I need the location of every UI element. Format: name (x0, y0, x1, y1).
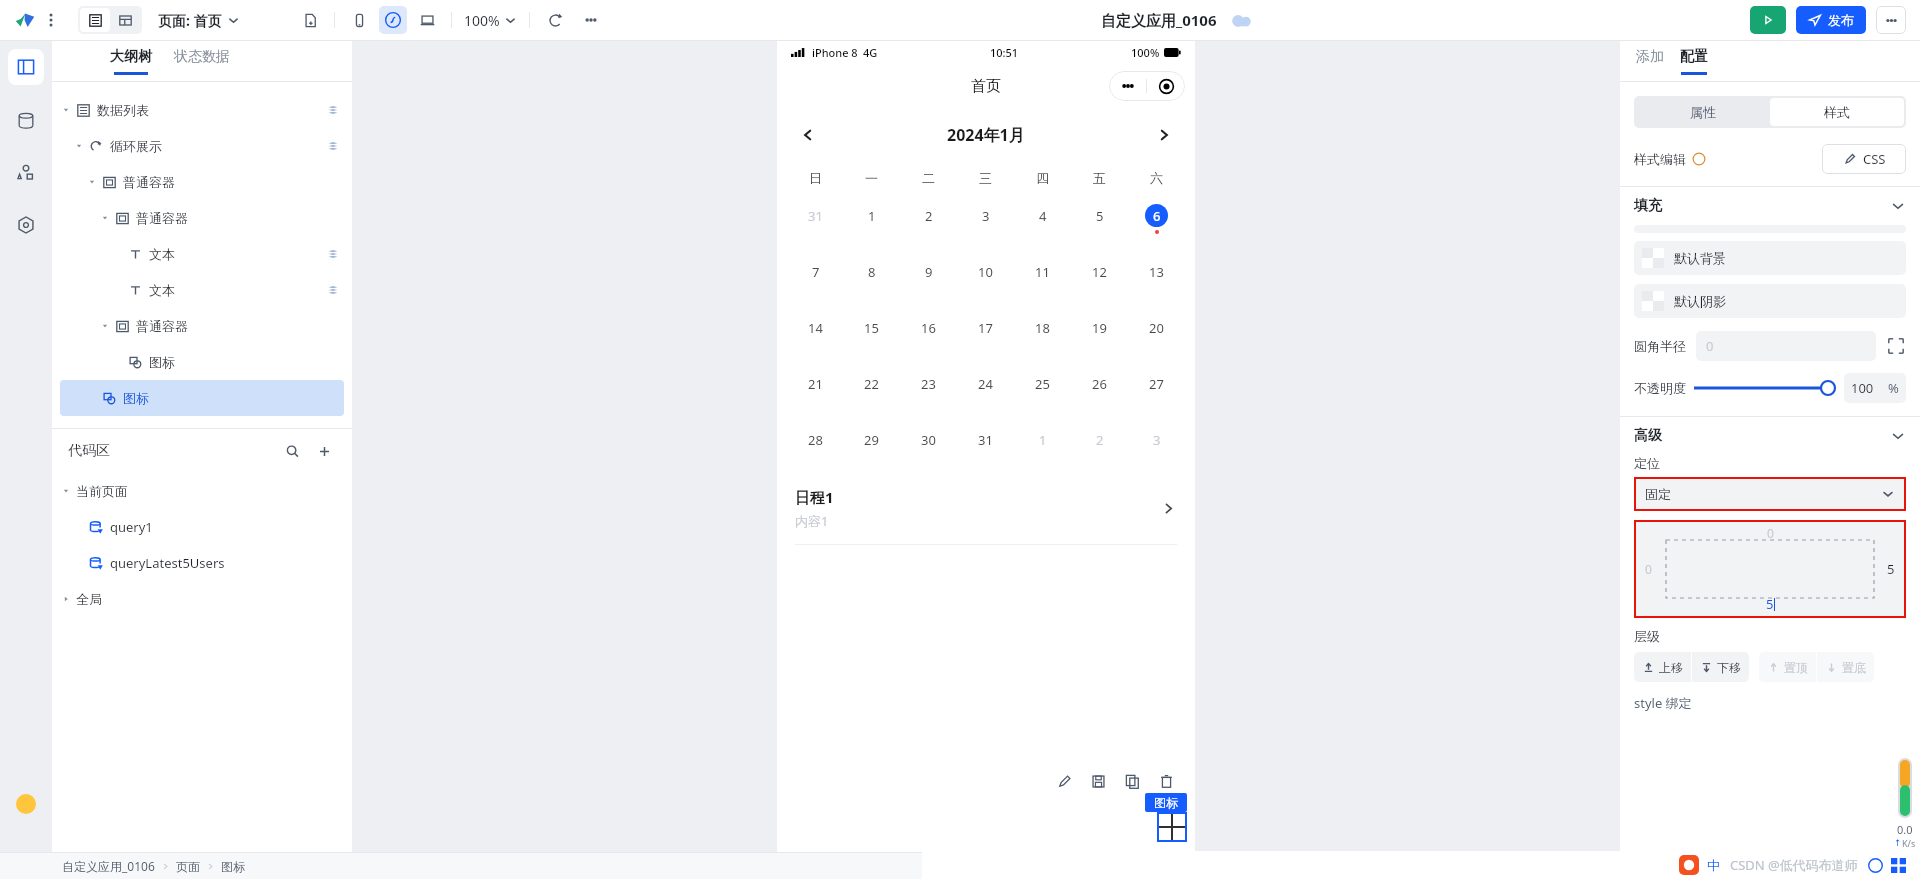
button[interactable]: Delete (1149, 764, 1183, 798)
button[interactable]: Mini program preview (379, 6, 407, 34)
button[interactable]: Corner sides (1886, 336, 1906, 356)
button[interactable]: Next month (1151, 122, 1177, 148)
button[interactable]: 当前页面 (60, 473, 344, 509)
button[interactable]: 6 (1128, 195, 1185, 251)
button[interactable]: Copy (1115, 764, 1149, 798)
button[interactable]: queryLatest5Users (60, 545, 344, 581)
button[interactable]: 26 (1071, 363, 1128, 419)
button[interactable]: 14 (787, 307, 843, 363)
button[interactable]: 7 (787, 251, 843, 307)
button[interactable]: 17 (957, 307, 1014, 363)
button[interactable]: 16 (900, 307, 957, 363)
button[interactable]: 24 (957, 363, 1014, 419)
button[interactable]: 20 (1128, 307, 1185, 363)
button[interactable]: 100% (464, 11, 517, 30)
button[interactable]: 27 (1128, 363, 1185, 419)
button[interactable] (1694, 378, 1836, 398)
button[interactable]: 12 (1071, 251, 1128, 307)
button[interactable]: 普通容器 (60, 164, 344, 200)
button[interactable]: 配置 (1680, 48, 1708, 75)
button[interactable]: Run preview (1750, 6, 1786, 34)
button[interactable]: 图标 (60, 344, 344, 380)
button[interactable]: 普通容器 (60, 308, 344, 344)
button[interactable]: Layout panel (8, 49, 44, 85)
button[interactable]: 23 (900, 363, 957, 419)
button[interactable]: 添加 (1636, 48, 1664, 75)
button[interactable]: 1 (843, 195, 900, 251)
button[interactable]: New page (296, 6, 324, 34)
button[interactable]: Save (1081, 764, 1115, 798)
button[interactable]: 属性 (1636, 98, 1770, 126)
button[interactable]: 9 (900, 251, 957, 307)
button[interactable]: 文本 (60, 236, 344, 272)
button[interactable]: 固定 (1645, 479, 1895, 509)
button[interactable]: 数据列表 (60, 92, 344, 128)
button[interactable]: 1 (1014, 419, 1071, 475)
button[interactable]: 下移 (1700, 652, 1741, 682)
button[interactable]: CSS (1822, 144, 1906, 174)
button[interactable]: 普通容器 (60, 200, 344, 236)
button[interactable]: 默认阴影 (1642, 284, 1898, 318)
button[interactable]: 3 (1128, 419, 1185, 475)
button[interactable]: 置顶 (1767, 652, 1808, 682)
button[interactable]: 31 (957, 419, 1014, 475)
button[interactable]: 样式 (1770, 98, 1904, 126)
button[interactable]: 28 (787, 419, 843, 475)
button[interactable]: More tools (578, 7, 604, 33)
button[interactable]: 11 (1014, 251, 1071, 307)
button[interactable]: Mini program menu (1109, 71, 1185, 101)
button[interactable]: query1 (60, 509, 344, 545)
button[interactable]: Outline view (80, 8, 110, 32)
button[interactable]: 15 (843, 307, 900, 363)
button[interactable]: Settings (8, 207, 44, 243)
button[interactable]: 开发历史版本 (1650, 859, 1740, 874)
button[interactable]: 2 (1071, 419, 1128, 475)
button[interactable]: 29 (843, 419, 900, 475)
button[interactable]: Previous month (795, 122, 821, 148)
button[interactable]: Phone preview (345, 6, 373, 34)
button[interactable]: 自定义应用_0106 (62, 858, 245, 874)
button[interactable]: 8 (843, 251, 900, 307)
button[interactable]: Add (312, 439, 336, 463)
button[interactable]: 图标 (1154, 795, 1178, 810)
button[interactable]: Components (8, 155, 44, 191)
button[interactable]: 31 (787, 195, 843, 251)
button[interactable]: 21 (787, 363, 843, 419)
button[interactable]: 图标 (60, 380, 344, 416)
button[interactable]: 页面: 首页 (158, 11, 240, 30)
button[interactable]: Help (6, 784, 46, 824)
button[interactable]: 状态数据 (174, 48, 230, 75)
button[interactable]: Edit (1047, 764, 1081, 798)
button[interactable]: 19 (1071, 307, 1128, 363)
button[interactable]: 5 (1071, 195, 1128, 251)
button[interactable]: 4 (1014, 195, 1071, 251)
button[interactable]: More (1876, 6, 1906, 34)
button[interactable]: Desktop preview (413, 6, 441, 34)
button[interactable]: 大纲树 (108, 48, 154, 75)
button[interactable]: 13 (1128, 251, 1185, 307)
button[interactable]: 10 (957, 251, 1014, 307)
button[interactable]: 100 (1851, 373, 1899, 403)
button[interactable]: 置底 (1825, 652, 1866, 682)
button[interactable]: 30 (900, 419, 957, 475)
button[interactable]: 日程1 (795, 487, 1177, 545)
button[interactable]: Refresh (542, 7, 568, 33)
button[interactable]: 25 (1014, 363, 1071, 419)
button[interactable]: 上移 (1642, 652, 1683, 682)
button[interactable]: Search (280, 439, 304, 463)
button[interactable]: 循环展示 (60, 128, 344, 164)
button[interactable]: 发布 (1808, 6, 1854, 34)
button[interactable]: 22 (843, 363, 900, 419)
button[interactable]: Grid view (110, 8, 140, 32)
button[interactable]: 2 (900, 195, 957, 251)
button[interactable]: Data (8, 103, 44, 139)
button[interactable]: More app options (42, 11, 60, 29)
button[interactable]: 3 (957, 195, 1014, 251)
button[interactable]: 18 (1014, 307, 1071, 363)
button[interactable]: 全局 (60, 581, 344, 617)
button[interactable]: 默认背景 (1642, 241, 1898, 275)
button[interactable]: 文本 (60, 272, 344, 308)
